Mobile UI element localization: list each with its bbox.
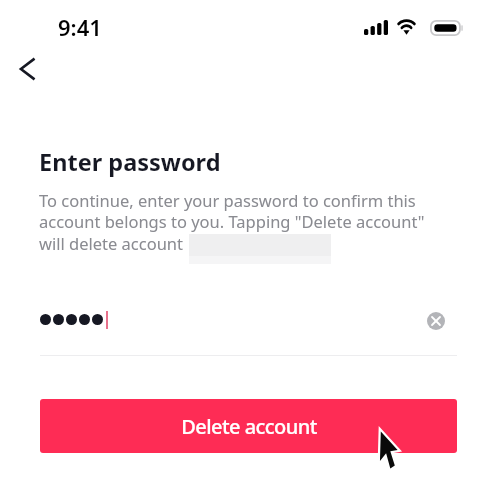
staticText: 9:41 — [58, 12, 102, 42]
button[interactable]: Delete account — [40, 399, 457, 453]
staticText: Enter password — [39, 146, 221, 178]
button[interactable]: Clear text — [419, 304, 453, 338]
button[interactable]: Back — [4, 45, 52, 93]
staticText: Delete account — [181, 413, 317, 440]
staticText: To continue, enter your password to conf… — [39, 189, 439, 255]
